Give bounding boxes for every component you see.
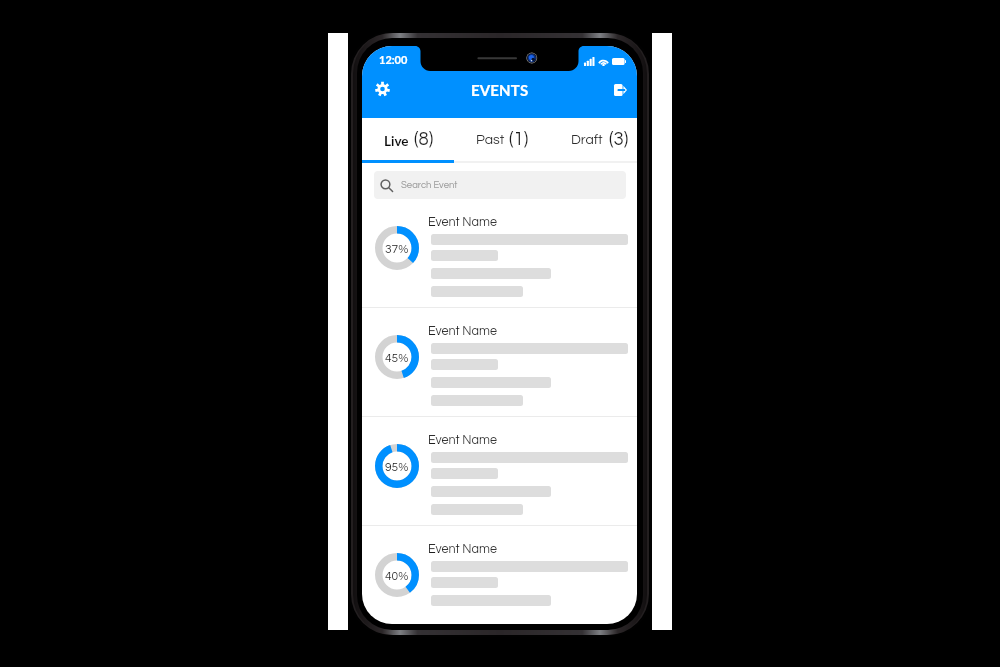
staticText: Live [384, 133, 409, 149]
staticText: 95% [385, 461, 409, 473]
button[interactable]: Search Event [374, 171, 626, 199]
staticText: (1) [509, 130, 529, 149]
staticText: 37% [385, 243, 409, 255]
staticText: Event Name [428, 543, 497, 556]
staticText: Event Name [428, 434, 497, 447]
staticText: Event Name [428, 325, 497, 338]
button[interactable]: 37% [362, 199, 637, 307]
staticText: 45% [385, 352, 409, 364]
button[interactable]: Live [375, 124, 447, 158]
button[interactable]: 40% [362, 526, 637, 611]
staticText: 40% [385, 570, 409, 582]
button[interactable]: Log out [603, 72, 637, 108]
staticText: EVENTS [471, 81, 529, 99]
staticText: Past [476, 133, 505, 147]
staticText: Draft [571, 133, 603, 147]
button[interactable]: 95% [362, 417, 637, 525]
staticText: Search Event [401, 180, 458, 190]
staticText: Event Name [428, 216, 497, 229]
button[interactable]: 45% [362, 308, 637, 416]
staticText: (8) [414, 130, 434, 149]
staticText: (3) [609, 130, 629, 149]
button[interactable]: Draft [562, 124, 637, 158]
staticText: 12:00 [379, 53, 408, 66]
button[interactable]: Past [467, 124, 538, 158]
button[interactable]: Settings [365, 71, 399, 107]
